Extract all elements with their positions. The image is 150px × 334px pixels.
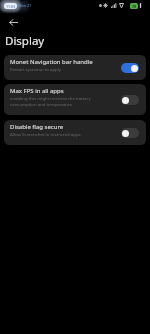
staticText: 11:03 xyxy=(6,4,16,9)
staticText: Allow Screenshot in restricted apps xyxy=(10,131,81,137)
button[interactable]: Monet Navigation bar handle xyxy=(4,55,146,80)
button[interactable]: Back xyxy=(4,13,23,32)
staticText: Max FPS in all apps xyxy=(10,87,64,95)
button[interactable]: Toggle xyxy=(121,128,139,138)
staticText: Mon 21 xyxy=(18,3,32,8)
button[interactable]: Max FPS in all apps xyxy=(4,84,146,115)
button[interactable]: Toggle xyxy=(121,63,139,73)
staticText: enabling this might increase the battery xyxy=(10,95,91,101)
button[interactable]: Disable flag secure xyxy=(4,120,146,145)
staticText: Restart systemui to apply xyxy=(10,66,62,72)
staticText: Display xyxy=(5,33,45,49)
button[interactable]: Toggle xyxy=(121,95,139,105)
staticText: Disable flag secure xyxy=(10,123,64,131)
staticText: 78 xyxy=(132,4,137,9)
staticText: Monet Navigation bar handle xyxy=(10,58,93,66)
staticText: consumption and temperature xyxy=(10,101,73,107)
